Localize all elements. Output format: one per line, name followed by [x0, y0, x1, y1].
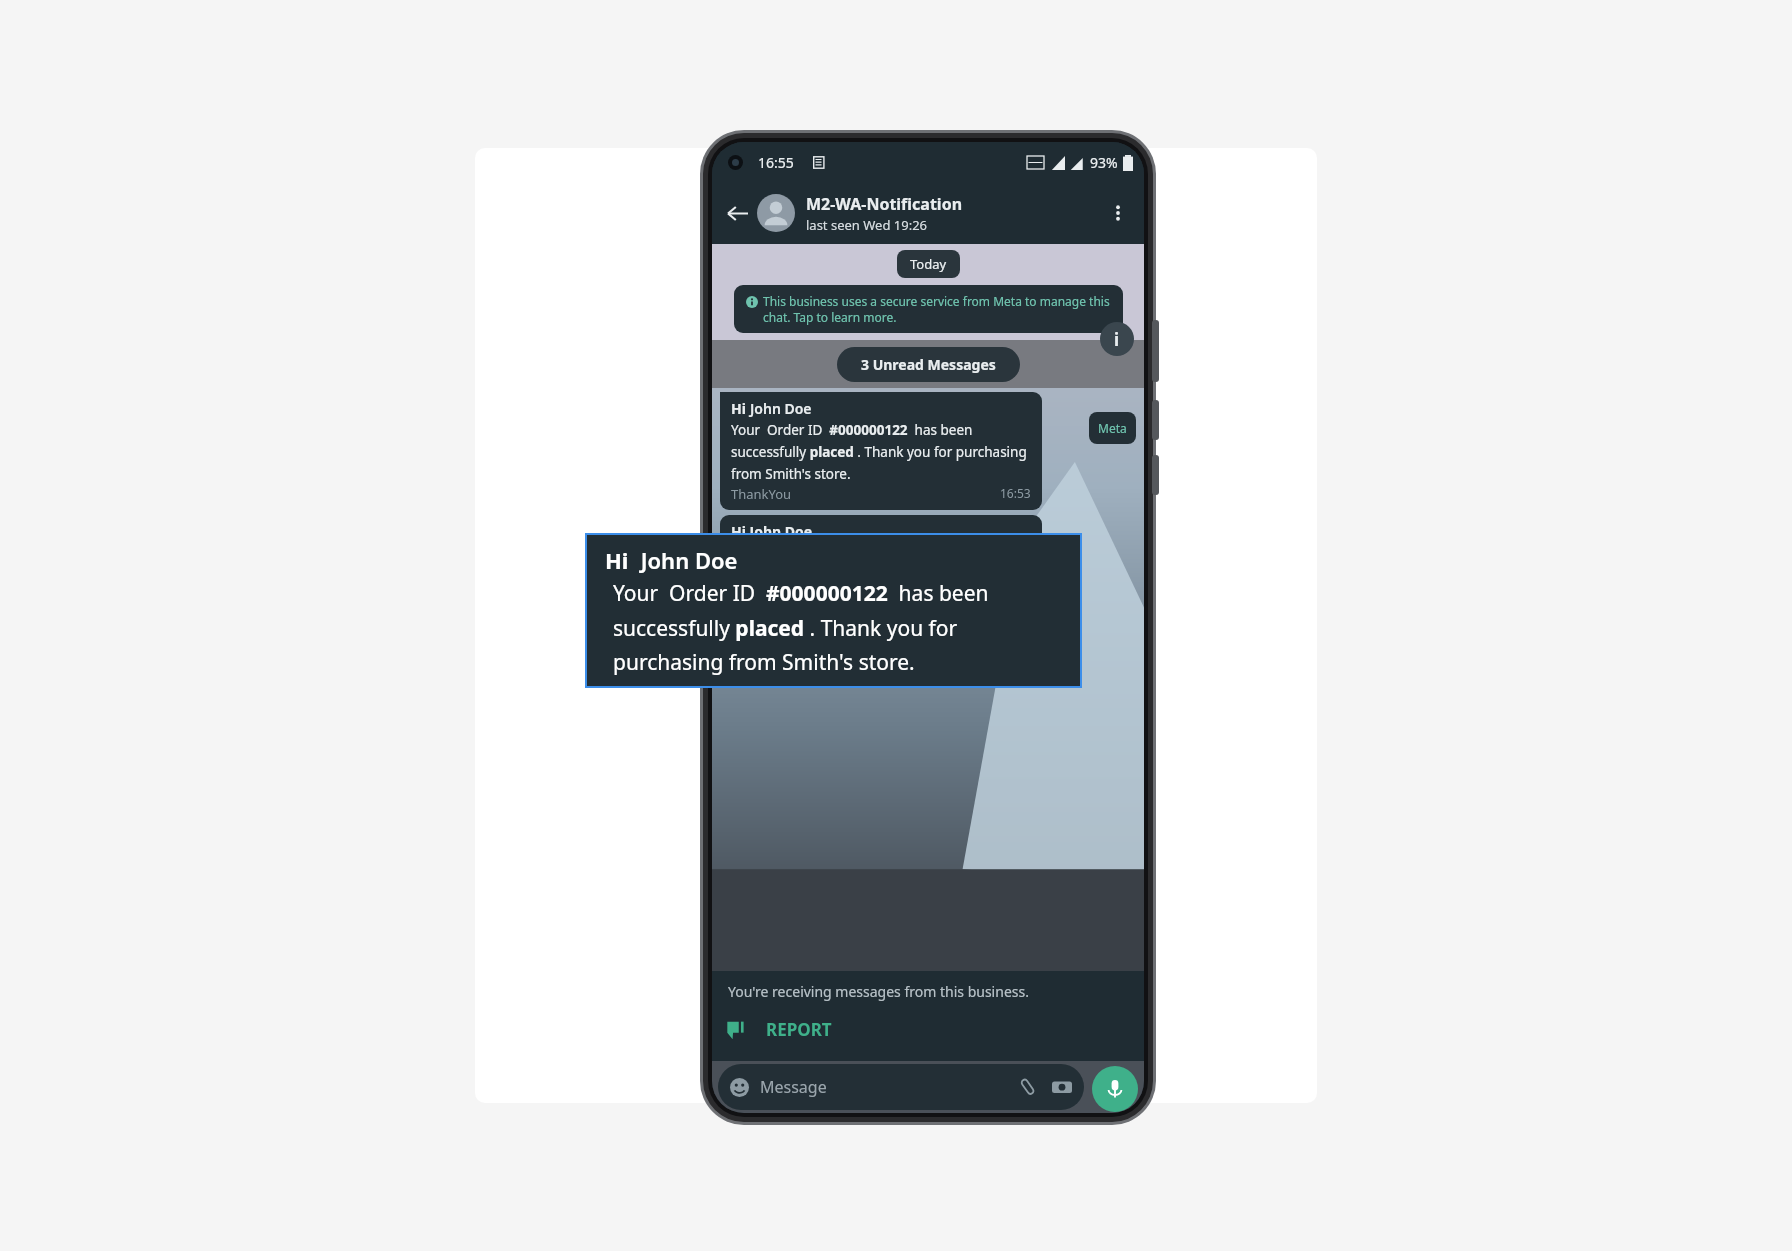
- button[interactable]: Message: [730, 1064, 1072, 1110]
- staticText: 16:53: [1000, 485, 1031, 501]
- staticText: M2-WA-Notification: [806, 193, 963, 215]
- staticText: Your Order ID #000000122 has been succes…: [613, 579, 1068, 676]
- staticText: 93%: [1090, 153, 1118, 172]
- staticText: Your Order: [731, 604, 808, 622]
- button[interactable]: Hi: [731, 399, 1031, 503]
- staticText: Hi John Doe: [731, 522, 813, 541]
- button[interactable]: Hi: [605, 545, 1068, 686]
- staticText: #000000124: [808, 604, 887, 622]
- button[interactable]: REPORT: [726, 1018, 832, 1041]
- staticText: Hi: [731, 399, 750, 418]
- button[interactable]: This business uses a secure service from…: [746, 293, 1111, 325]
- button[interactable]: Voice message: [1092, 1066, 1138, 1112]
- staticText: i: [1114, 328, 1120, 351]
- staticText: last seen Wed 19:26: [806, 216, 928, 234]
- button[interactable]: 3 Unread Messages: [861, 355, 996, 374]
- staticText: 16:55: [758, 153, 794, 172]
- other: Attach: [1018, 1077, 1038, 1097]
- other: Camera: [1052, 1077, 1072, 1097]
- staticText: REPORT: [766, 1018, 832, 1041]
- staticText: ThankYou: [731, 624, 792, 642]
- staticText: This business uses a secure service from…: [763, 293, 1111, 325]
- button[interactable]: Contact avatar: [757, 194, 795, 232]
- staticText: Meta: [1098, 420, 1127, 436]
- staticText: ThankYou: [731, 485, 792, 503]
- staticText: Your Order ID #000000122 has been succes…: [731, 421, 1031, 483]
- button[interactable]: Back: [720, 196, 754, 230]
- staticText: John Doe: [635, 545, 738, 575]
- button[interactable]: Hi John Doe: [731, 522, 1031, 642]
- staticText: Thank you for your order from the Smith'…: [731, 544, 1031, 604]
- staticText: 3 Unread Messages: [861, 355, 996, 374]
- staticText: Message: [760, 1076, 827, 1098]
- staticText: You're receiving messages from this busi…: [728, 982, 1029, 1001]
- button[interactable]: Information: [1100, 322, 1134, 356]
- staticText: Hi: [605, 545, 635, 575]
- staticText: John Doe: [750, 399, 812, 418]
- staticText: Today: [910, 255, 947, 273]
- button[interactable]: More options: [1102, 197, 1134, 229]
- button[interactable]: Meta: [1098, 420, 1127, 436]
